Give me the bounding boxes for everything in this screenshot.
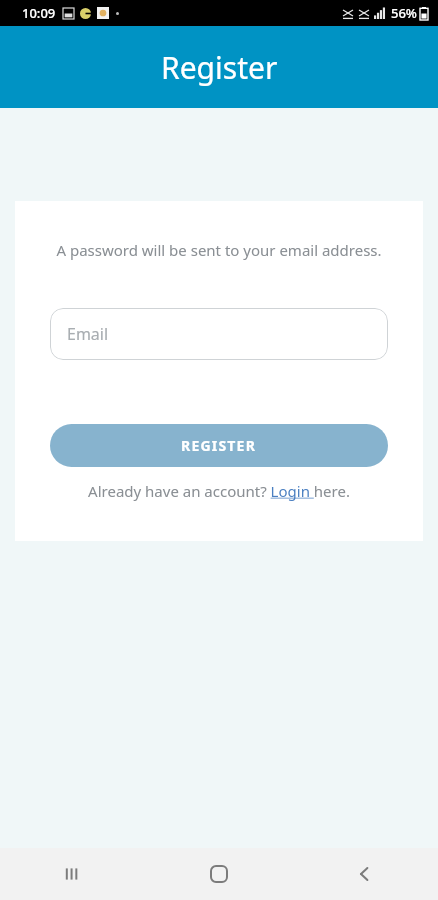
staticText: A password will be sent to your email ad… bbox=[50, 240, 388, 260]
button[interactable]: REGISTER bbox=[50, 424, 388, 467]
button[interactable]: Email bbox=[50, 308, 388, 360]
staticText: Already have an account? Login here. bbox=[88, 481, 350, 501]
staticText: 10:09 bbox=[22, 4, 56, 22]
button[interactable]: Back bbox=[292, 848, 438, 900]
staticText: Email bbox=[67, 323, 109, 345]
button[interactable]: Home bbox=[146, 848, 292, 900]
staticText: REGISTER bbox=[181, 436, 257, 455]
button[interactable]: Recent apps bbox=[0, 848, 146, 900]
staticText: 56% bbox=[391, 4, 417, 22]
staticText: Register bbox=[161, 47, 278, 88]
button[interactable]: Already have an account? Login here. bbox=[50, 481, 388, 501]
